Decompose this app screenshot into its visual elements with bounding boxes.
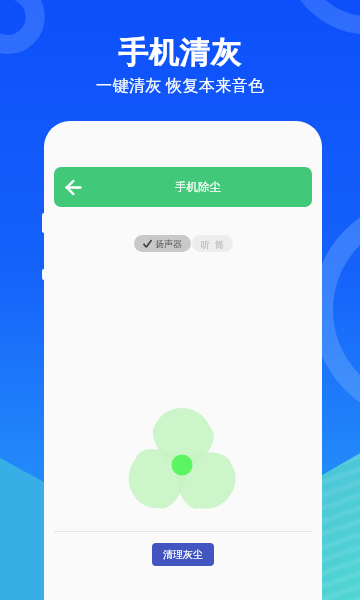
button[interactable]: 听 筒 <box>192 235 233 252</box>
button[interactable]: Back <box>54 167 92 207</box>
button[interactable]: Back <box>54 167 312 207</box>
staticText: 扬声器 <box>155 238 182 249</box>
staticText: 手机清灰 <box>118 34 242 72</box>
staticText: 一键清灰 恢复本来音色 <box>96 74 265 96</box>
staticText: 清理灰尘 <box>163 548 203 561</box>
staticText: 手机除尘 <box>175 180 221 194</box>
button[interactable]: 清理灰尘 <box>152 543 214 566</box>
button[interactable]: 扬声器 <box>134 235 191 252</box>
staticText: 听 筒 <box>201 238 224 250</box>
